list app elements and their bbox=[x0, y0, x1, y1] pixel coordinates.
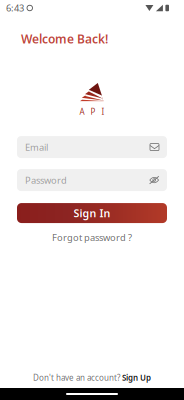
button[interactable]: Sign In bbox=[17, 203, 167, 223]
button[interactable]: Email bbox=[17, 136, 167, 158]
staticText: Don't have an account? bbox=[33, 372, 120, 383]
button[interactable]: Password bbox=[17, 169, 167, 191]
staticText: Email bbox=[25, 141, 48, 153]
staticText: Sign Up bbox=[122, 372, 151, 383]
staticText: 6:43 bbox=[6, 2, 24, 14]
staticText: A P I bbox=[79, 106, 104, 117]
button[interactable]: Forgot password ? bbox=[46, 229, 138, 245]
staticText: Forgot password ? bbox=[52, 231, 132, 243]
staticText: Welcome Back! bbox=[21, 31, 108, 47]
button[interactable]: Don't have an account? bbox=[25, 369, 159, 386]
staticText: Sign In bbox=[73, 206, 110, 220]
staticText: Password bbox=[25, 174, 67, 186]
